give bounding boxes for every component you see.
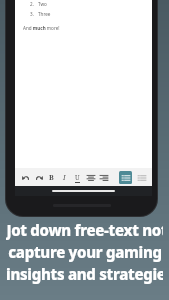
button[interactable]: Bulleted list xyxy=(135,171,148,184)
staticText: I xyxy=(63,173,66,183)
staticText: 3. xyxy=(30,11,34,17)
staticText: insights and strategies. xyxy=(6,264,163,284)
button[interactable]: Undo xyxy=(19,171,32,184)
staticText: B xyxy=(49,173,54,183)
staticText: 2. xyxy=(30,1,34,7)
button[interactable]: Italic xyxy=(58,171,71,184)
button[interactable]: Align right xyxy=(97,171,110,184)
button[interactable]: Underline xyxy=(71,171,84,184)
staticText: capture your gaming xyxy=(8,242,162,262)
staticText: Two xyxy=(38,1,47,7)
staticText: And much more! xyxy=(23,25,60,31)
staticText: U xyxy=(75,173,80,182)
button[interactable]: Redo xyxy=(32,171,45,184)
staticText: Jot down free-text notes to xyxy=(6,220,163,240)
button[interactable]: Numbered list xyxy=(119,171,132,184)
button[interactable]: Bold xyxy=(45,171,58,184)
staticText: Three xyxy=(38,11,51,17)
button[interactable]: Align center xyxy=(84,171,97,184)
